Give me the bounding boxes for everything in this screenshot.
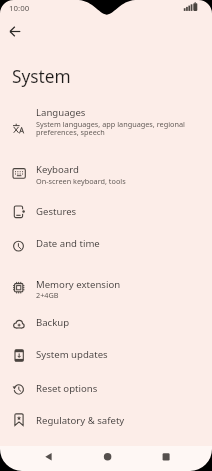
button[interactable] — [0, 266, 212, 306]
button[interactable] — [0, 372, 212, 405]
staticText: Date and time — [36, 237, 100, 250]
button[interactable] — [0, 228, 212, 266]
staticText: Reset options — [36, 382, 98, 395]
staticText: Regulatory & safety — [36, 414, 125, 427]
staticText: Gestures — [36, 205, 77, 218]
staticText: Keyboard — [36, 163, 79, 176]
staticText: Backup — [36, 316, 70, 329]
staticText: 10:00 — [9, 3, 30, 14]
button[interactable] — [0, 199, 212, 228]
button[interactable] — [0, 339, 212, 372]
staticText: preferences, speech — [36, 127, 105, 137]
button[interactable] — [0, 405, 212, 440]
button[interactable] — [0, 306, 212, 339]
button[interactable] — [6, 22, 25, 41]
staticText: System — [12, 65, 71, 89]
staticText: System updates — [36, 348, 108, 361]
button[interactable] — [38, 446, 60, 468]
staticText: Memory extension — [36, 278, 121, 291]
button[interactable] — [96, 446, 118, 468]
staticText: Languages — [36, 106, 86, 119]
button[interactable] — [155, 446, 177, 468]
staticText: 2+4GB — [36, 290, 59, 300]
button[interactable] — [0, 98, 212, 147]
button[interactable] — [0, 147, 212, 199]
staticText: System languages, app languages, regiona… — [36, 119, 185, 129]
staticText: On-screen keyboard, tools — [36, 176, 126, 186]
